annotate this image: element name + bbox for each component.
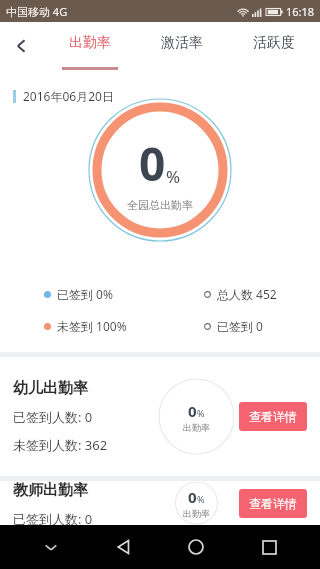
staticText: 幼儿出勤率 <box>13 379 88 398</box>
staticText: 出勤率 <box>183 508 210 519</box>
button[interactable]: 活跃度 <box>228 22 320 70</box>
staticText: 教师出勤率 <box>13 481 88 500</box>
button[interactable]: 出勤率 <box>44 22 136 70</box>
staticText: % <box>197 493 205 505</box>
staticText: 2016年06月20日 <box>23 88 114 104</box>
staticText: 总人数 452 <box>217 286 277 302</box>
staticText: 查看详情 <box>249 496 297 511</box>
staticText: 活跃度 <box>253 34 295 52</box>
staticText: 中国移动 4G <box>6 4 68 19</box>
staticText: 未签到 100% <box>57 318 127 334</box>
button[interactable]: 查看详情 <box>239 489 307 518</box>
staticText: % <box>197 407 205 419</box>
button[interactable]: Hide navigation bar <box>29 525 73 569</box>
staticText: 16:18 <box>286 4 315 19</box>
button[interactable]: Back <box>102 525 146 569</box>
button[interactable]: 教师出勤率 <box>0 481 320 525</box>
staticText: 未签到人数: 362 <box>13 436 108 454</box>
button[interactable]: Back <box>0 24 44 68</box>
staticText: 激活率 <box>161 34 203 52</box>
button[interactable]: Recent apps <box>247 525 291 569</box>
staticText: 出勤率 <box>69 34 111 52</box>
button[interactable]: 幼儿出勤率 <box>0 357 320 476</box>
staticText: 已签到人数: 0 <box>13 510 93 525</box>
staticText: 已签到 0 <box>217 318 263 334</box>
staticText: 全园总出勤率 <box>127 198 193 212</box>
staticText: 已签到 0% <box>57 286 113 302</box>
button[interactable]: Home <box>174 525 218 569</box>
staticText: 0 <box>139 132 166 195</box>
staticText: 已签到人数: 0 <box>13 408 93 426</box>
staticText: % <box>166 165 181 188</box>
staticText: 出勤率 <box>183 422 210 433</box>
button[interactable]: 查看详情 <box>239 402 307 431</box>
staticText: 0 <box>188 401 197 421</box>
staticText: 查看详情 <box>249 409 297 424</box>
button[interactable]: 激活率 <box>136 22 228 70</box>
staticText: 0 <box>188 487 197 507</box>
